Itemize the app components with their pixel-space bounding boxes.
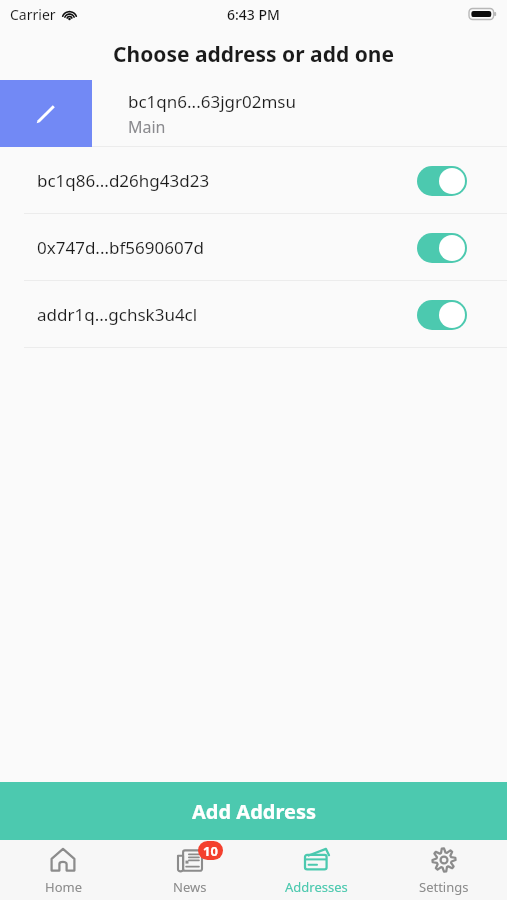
- staticText: 6:43 PM: [227, 5, 280, 24]
- staticText: bc1q86...d26hg43d23: [37, 169, 417, 192]
- button[interactable]: Edit address: [0, 80, 92, 147]
- button[interactable]: Toggle address: [417, 233, 467, 263]
- staticText: Home: [45, 878, 82, 896]
- staticText: Settings: [419, 878, 469, 896]
- button[interactable]: Add Address: [0, 782, 507, 840]
- staticText: Choose address or add one: [113, 40, 394, 69]
- staticText: Add Address: [192, 798, 316, 825]
- button[interactable]: Settings: [380, 840, 507, 900]
- staticText: News: [173, 878, 207, 896]
- button[interactable]: Toggle address: [417, 300, 467, 330]
- button[interactable]: addr1q...gchsk3u4cl: [0, 281, 507, 348]
- staticText: Carrier: [10, 5, 56, 24]
- staticText: addr1q...gchsk3u4cl: [37, 303, 417, 326]
- staticText: Addresses: [285, 878, 348, 896]
- staticText: bc1qn6...63jgr02msu: [128, 90, 296, 113]
- button[interactable]: 10: [126, 840, 253, 900]
- staticText: 10: [203, 842, 218, 860]
- staticText: 0x747d...bf5690607d: [37, 236, 417, 259]
- staticText: Main: [128, 116, 166, 138]
- button[interactable]: 0x747d...bf5690607d: [0, 214, 507, 281]
- button[interactable]: bc1qn6...63jgr02msu: [92, 80, 507, 147]
- button[interactable]: Home: [0, 840, 126, 900]
- button[interactable]: Addresses: [253, 840, 380, 900]
- button[interactable]: Toggle address: [417, 166, 467, 196]
- button[interactable]: bc1q86...d26hg43d23: [0, 147, 507, 214]
